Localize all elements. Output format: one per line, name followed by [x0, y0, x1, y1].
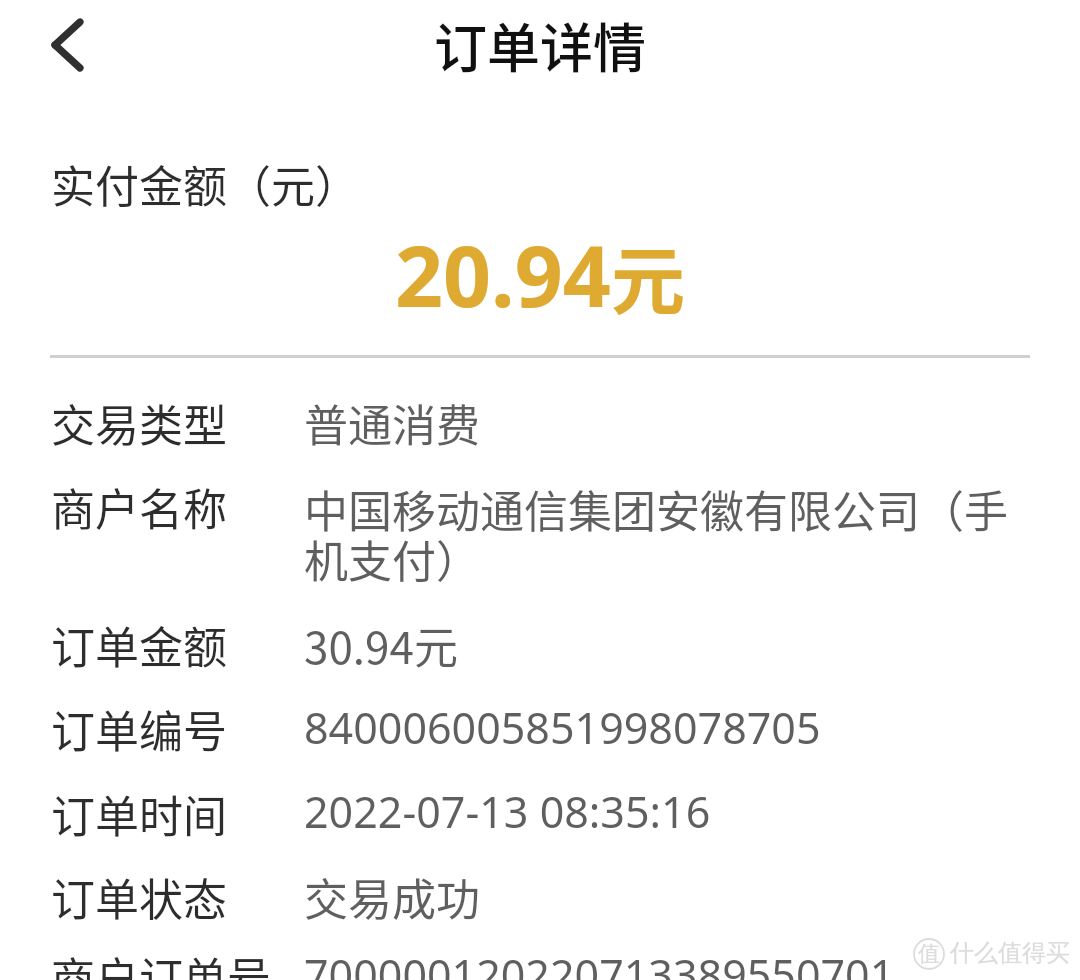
staticText: 订单编号 — [51, 698, 227, 760]
staticText: 实付金额（元） — [51, 153, 359, 215]
staticText: 30.94元 — [304, 614, 458, 676]
staticText: 元 — [611, 222, 685, 329]
staticText: 840006005851998078705 — [304, 695, 821, 757]
staticText: 订单详情 — [0, 7, 1080, 84]
staticText: 700000120220713389550701 — [304, 942, 895, 980]
staticText: 订单金额 — [51, 614, 227, 676]
staticText: 订单状态 — [51, 866, 227, 928]
staticText: 普通消费 — [304, 392, 480, 454]
staticText: 2022-07-13 08:35:16 — [304, 779, 711, 841]
staticText: 商户名称 — [51, 476, 227, 538]
staticText: 值 — [918, 940, 940, 968]
staticText: 订单时间 — [51, 783, 227, 845]
button[interactable]: Back — [0, 0, 104, 104]
staticText: 交易成功 — [304, 866, 480, 928]
staticText: 20.94 — [395, 217, 611, 331]
staticText: 中国移动通信集团安徽有限公司（手机支付） — [304, 488, 1034, 588]
staticText: 交易类型 — [51, 392, 227, 454]
staticText: 什么值得买 — [950, 938, 1070, 968]
staticText: 商户订单号 — [51, 945, 271, 980]
